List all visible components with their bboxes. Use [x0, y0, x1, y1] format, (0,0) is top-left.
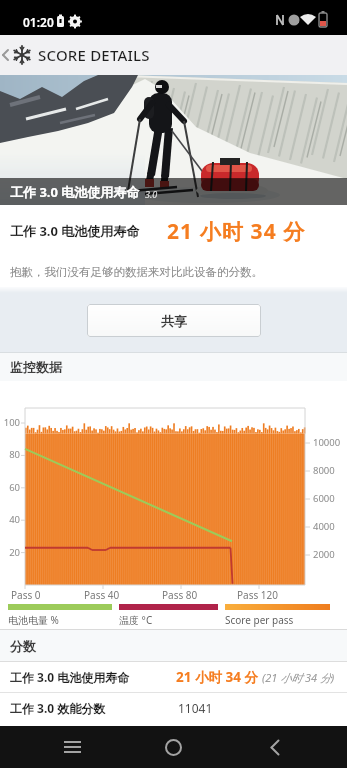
button[interactable] — [156, 730, 190, 764]
staticText: Score per pass — [225, 613, 294, 627]
staticText: 4000 — [313, 520, 335, 533]
staticText: 10000 — [313, 436, 341, 449]
button[interactable] — [56, 730, 90, 764]
button[interactable] — [258, 730, 292, 764]
staticText: 8000 — [313, 464, 335, 477]
button[interactable]: 工作 3.0 效能分数 — [10, 693, 347, 723]
staticText: 11041 — [178, 700, 213, 716]
staticText: 3.0 — [145, 188, 158, 200]
button[interactable] — [0, 35, 12, 75]
staticText: (21 小时 34 分) — [262, 670, 335, 685]
staticText: 工作 3.0 效能分数 — [10, 700, 106, 716]
staticText: 工作 3.0 电池使用寿命 — [10, 222, 140, 240]
staticText: 工作 3.0 电池使用寿命 — [10, 183, 140, 201]
staticText: 21 小时 34 分 — [176, 668, 258, 686]
staticText: 40 — [0, 513, 20, 526]
button[interactable]: 共享 — [87, 304, 261, 337]
staticText: 监控数据 — [10, 359, 62, 375]
staticText: 60 — [0, 481, 20, 494]
staticText: 温度 °C — [119, 613, 153, 627]
staticText: 共享 — [161, 313, 187, 329]
staticText: 分数 — [10, 638, 36, 654]
button[interactable]: 工作 3.0 电池使用寿命 — [10, 662, 335, 692]
staticText: 20 — [0, 546, 20, 559]
staticText: 抱歉，我们没有足够的数据来对比此设备的分数。 — [10, 265, 263, 279]
staticText: Pass 80 — [162, 588, 198, 602]
staticText: 01:20 — [23, 14, 54, 30]
staticText: 100 — [0, 416, 20, 429]
staticText: Pass 0 — [11, 588, 41, 602]
staticText: 工作 3.0 电池使用寿命 — [10, 669, 130, 685]
staticText: Pass 40 — [84, 588, 120, 602]
staticText: 80 — [0, 448, 20, 461]
staticText: 21 小时 34 分 — [167, 217, 306, 246]
staticText: Pass 120 — [237, 588, 278, 602]
staticText: 6000 — [313, 492, 335, 505]
staticText: SCORE DETAILS — [38, 45, 150, 65]
staticText: 2000 — [313, 548, 335, 561]
staticText: 电池电量 % — [8, 613, 59, 627]
